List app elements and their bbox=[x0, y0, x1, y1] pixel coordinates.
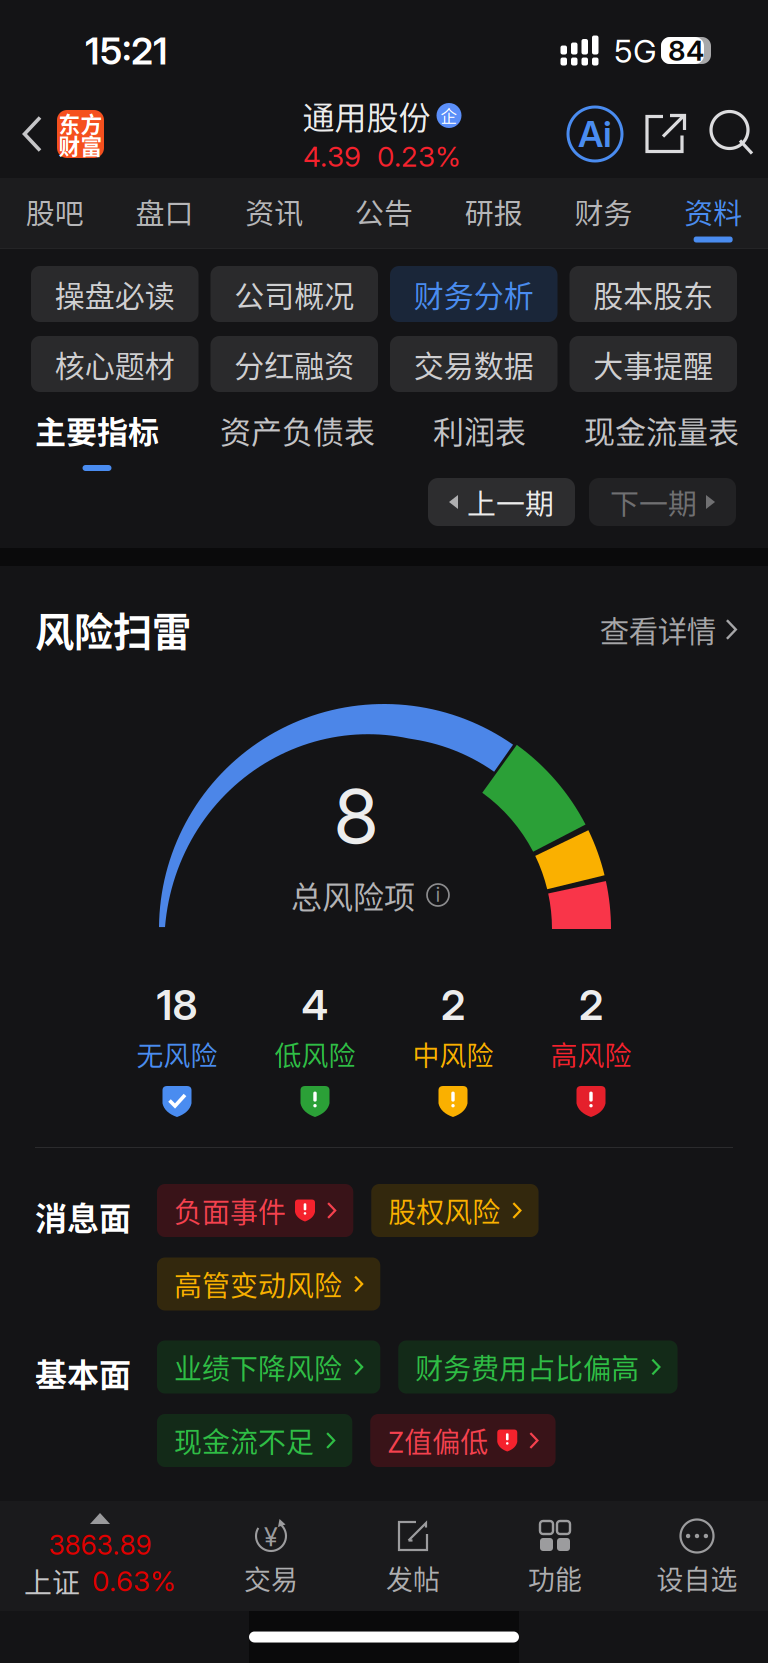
staticText: 财务费用占比偏高 bbox=[415, 1347, 639, 1387]
button[interactable]: 操盘必读 bbox=[31, 266, 198, 322]
staticText: 发帖 bbox=[386, 1558, 440, 1597]
button[interactable]: 现金流不足 bbox=[157, 1414, 352, 1467]
button[interactable]: Z值偏低 bbox=[370, 1414, 556, 1467]
staticText: 0.23% bbox=[377, 140, 461, 173]
staticText: 无风险 bbox=[136, 1034, 217, 1073]
staticText: 资讯 bbox=[245, 190, 303, 232]
staticText: 财富 bbox=[58, 129, 102, 161]
button[interactable]: 发帖 bbox=[342, 1501, 484, 1611]
staticText: 4.39 bbox=[303, 140, 361, 173]
button[interactable]: 上一期 bbox=[428, 478, 575, 526]
button[interactable]: Back bbox=[8, 103, 57, 165]
button[interactable]: 查看详情 bbox=[600, 599, 737, 659]
staticText: 84 bbox=[668, 34, 704, 67]
staticText: 下一期 bbox=[610, 481, 697, 523]
button[interactable]: 交易数据 bbox=[390, 336, 557, 392]
staticText: 公告 bbox=[355, 190, 413, 232]
staticText: 基本面 bbox=[35, 1349, 131, 1396]
staticText: 2 bbox=[579, 980, 603, 1030]
staticText: 主要指标 bbox=[35, 408, 159, 452]
staticText: 功能 bbox=[528, 1558, 582, 1597]
button[interactable]: East Money home bbox=[57, 110, 104, 158]
staticText: 消息面 bbox=[35, 1193, 131, 1239]
button[interactable]: 资讯 bbox=[219, 178, 329, 248]
staticText: 15:21 bbox=[85, 28, 168, 74]
button[interactable]: 大事提醒 bbox=[569, 336, 737, 392]
staticText: 风险扫雷 bbox=[35, 601, 191, 658]
staticText: 公司概况 bbox=[234, 272, 354, 316]
staticText: 股权风险 bbox=[388, 1190, 500, 1231]
staticText: 上一期 bbox=[467, 481, 554, 523]
button[interactable]: 功能 bbox=[484, 1501, 626, 1611]
staticText: 盘口 bbox=[136, 190, 194, 232]
button[interactable]: 财务费用占比偏高 bbox=[398, 1340, 678, 1393]
button[interactable]: 高管变动风险 bbox=[157, 1257, 380, 1310]
staticText: 分红融资 bbox=[234, 342, 354, 386]
button[interactable]: 股吧 bbox=[0, 178, 110, 248]
staticText: 操盘必读 bbox=[55, 272, 175, 316]
button[interactable]: 设自选 bbox=[626, 1501, 768, 1611]
staticText: ¥ bbox=[264, 1522, 278, 1552]
button[interactable]: 下一期 bbox=[589, 478, 736, 526]
staticText: Ai bbox=[578, 112, 612, 156]
button[interactable]: AI assistant bbox=[560, 103, 630, 165]
staticText: 高风险 bbox=[550, 1034, 631, 1073]
button[interactable]: 主要指标 bbox=[35, 409, 159, 471]
staticText: 低风险 bbox=[274, 1034, 355, 1073]
staticText: 0.63% bbox=[92, 1564, 176, 1598]
button[interactable]: Search bbox=[702, 103, 755, 165]
staticText: 高管变动风险 bbox=[174, 1264, 342, 1304]
staticText: 5G bbox=[614, 32, 657, 70]
staticText: i bbox=[435, 882, 440, 907]
button[interactable]: 公司概况 bbox=[210, 266, 378, 322]
staticText: 负面事件 bbox=[174, 1190, 286, 1231]
staticText: 大事提醒 bbox=[593, 342, 713, 386]
staticText: 交易数据 bbox=[414, 342, 534, 386]
staticText: 2 bbox=[441, 980, 465, 1030]
staticText: 上证 bbox=[24, 1561, 80, 1601]
button[interactable]: 研报 bbox=[439, 178, 549, 248]
button[interactable]: 分红融资 bbox=[210, 336, 378, 392]
staticText: 核心题材 bbox=[55, 342, 175, 386]
button[interactable]: 负面事件 bbox=[157, 1184, 353, 1237]
staticText: 资产负债表 bbox=[220, 408, 375, 452]
button[interactable]: 资料 bbox=[658, 178, 768, 248]
staticText: 设自选 bbox=[656, 1558, 737, 1597]
button[interactable]: 财务 bbox=[549, 178, 658, 248]
button[interactable]: Share bbox=[630, 103, 702, 165]
button[interactable]: 资产负债表 bbox=[220, 409, 375, 471]
staticText: 现金流不足 bbox=[174, 1420, 314, 1461]
staticText: 业绩下降风险 bbox=[174, 1347, 342, 1387]
staticText: 通用股份 bbox=[302, 92, 430, 139]
button[interactable]: 业绩下降风险 bbox=[157, 1340, 380, 1393]
staticText: 现金流量表 bbox=[584, 408, 739, 452]
staticText: 18 bbox=[156, 980, 197, 1030]
staticText: 股本股东 bbox=[593, 272, 713, 316]
staticText: 4 bbox=[301, 980, 328, 1030]
button[interactable]: 股权风险 bbox=[371, 1184, 539, 1237]
staticText: 中风险 bbox=[412, 1034, 493, 1073]
staticText: 交易 bbox=[244, 1558, 298, 1597]
button[interactable]: 现金流量表 bbox=[584, 409, 739, 471]
staticText: 利润表 bbox=[433, 408, 526, 452]
staticText: 资料 bbox=[684, 190, 742, 232]
staticText: 查看详情 bbox=[600, 608, 716, 651]
button[interactable]: ¥ bbox=[200, 1501, 342, 1611]
button[interactable]: 核心题材 bbox=[31, 336, 198, 392]
staticText: 3863.89 bbox=[48, 1529, 151, 1561]
staticText: Z值偏低 bbox=[387, 1420, 488, 1461]
button[interactable]: 股本股东 bbox=[569, 266, 737, 322]
button[interactable]: 利润表 bbox=[433, 409, 526, 471]
button[interactable]: 财务分析 bbox=[390, 266, 557, 322]
button[interactable]: 公告 bbox=[329, 178, 439, 248]
staticText: 研报 bbox=[465, 190, 523, 232]
staticText: 企 bbox=[440, 103, 457, 127]
staticText: 8 bbox=[333, 771, 379, 861]
staticText: 财务分析 bbox=[414, 272, 534, 316]
staticText: 财务 bbox=[574, 190, 632, 232]
staticText: 总风险项 bbox=[291, 873, 415, 917]
button[interactable]: 3863.89 bbox=[0, 1501, 200, 1611]
staticText: 股吧 bbox=[26, 190, 84, 232]
button[interactable]: 盘口 bbox=[110, 178, 219, 248]
staticText: 东方 bbox=[58, 107, 102, 139]
